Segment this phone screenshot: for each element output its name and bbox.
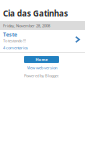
staticText: 4 comentarios (3, 45, 28, 50)
staticText: Home (35, 57, 47, 62)
button[interactable]: 4 comentarios (3, 45, 28, 50)
staticText: Cia das Gatinhas (3, 8, 68, 19)
button[interactable]: Open post (75, 36, 80, 43)
staticText: To testando !!! (3, 38, 26, 43)
staticText: View web version (27, 65, 57, 70)
button[interactable]: Teste (3, 31, 17, 38)
staticText: Friday, November 28, 2008 (3, 23, 50, 28)
button[interactable]: Home (24, 56, 59, 63)
staticText: Teste (3, 31, 17, 38)
button[interactable]: View web version (27, 65, 57, 70)
staticText: Powered by Blogger. (24, 73, 59, 78)
